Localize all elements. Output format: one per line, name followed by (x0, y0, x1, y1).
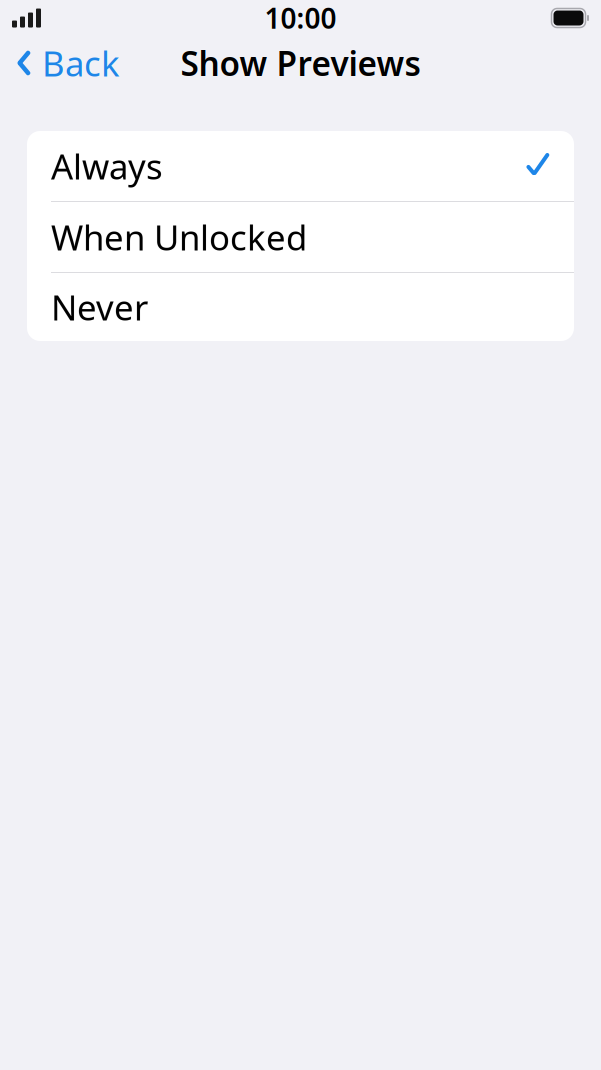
button[interactable]: Always (27, 131, 574, 201)
staticText: 10:00 (264, 0, 336, 37)
staticText: Never (51, 284, 148, 330)
staticText: Back (42, 40, 120, 86)
button[interactable]: Back (0, 32, 120, 94)
staticText: When Unlocked (51, 214, 307, 260)
button[interactable]: Never (27, 273, 574, 341)
staticText: Always (51, 143, 163, 189)
staticText: Show Previews (180, 41, 420, 85)
button[interactable]: When Unlocked (27, 202, 574, 272)
